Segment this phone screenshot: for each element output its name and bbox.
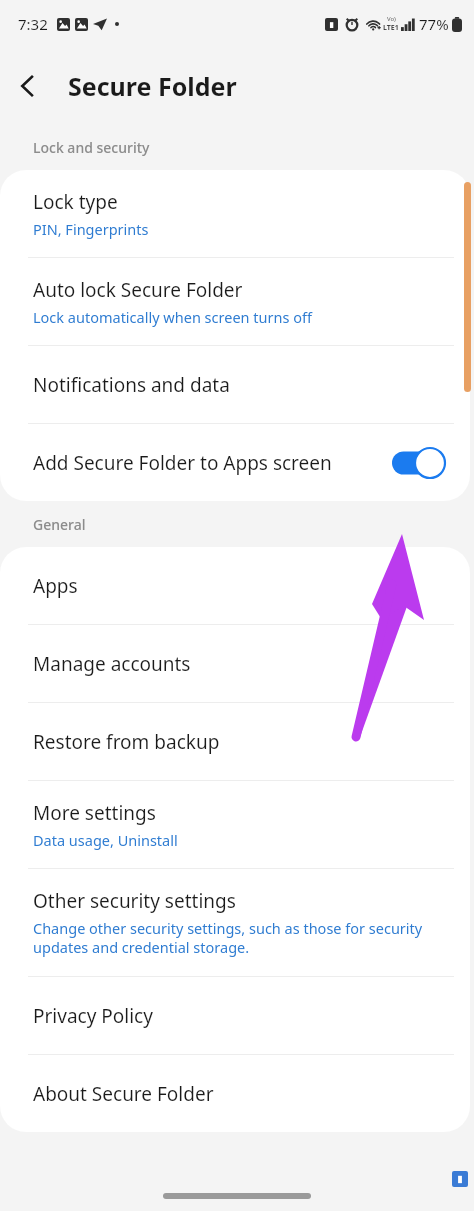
button[interactable]: Add Secure Folder to Apps screen <box>0 424 470 501</box>
staticText: Data usage, Uninstall <box>33 830 178 850</box>
button[interactable]: More settings <box>0 781 470 868</box>
staticText: More settings <box>33 800 156 826</box>
staticText: 77% <box>419 14 449 34</box>
staticText: Lock automatically when screen turns off <box>33 307 312 327</box>
button[interactable]: Other security settings <box>0 869 470 976</box>
staticText: Other security settings <box>33 888 236 914</box>
button[interactable]: Privacy Policy <box>0 977 470 1054</box>
staticText: Lock type <box>33 189 118 215</box>
staticText: PIN, Fingerprints <box>33 219 149 239</box>
staticText: Secure Folder <box>68 69 237 103</box>
staticText: Privacy Policy <box>33 1003 153 1029</box>
staticText: Restore from backup <box>33 729 220 755</box>
staticText: Notifications and data <box>33 372 230 398</box>
button[interactable]: Auto lock Secure Folder <box>0 258 470 345</box>
staticText: Apps <box>33 573 78 599</box>
button[interactable]: Notifications and data <box>0 346 470 423</box>
staticText: 7:32 <box>18 14 48 34</box>
staticText: LTE1 <box>383 23 399 33</box>
button[interactable]: Back <box>0 58 56 114</box>
staticText: Vo) <box>387 15 396 23</box>
button[interactable]: Restore from backup <box>0 703 470 780</box>
staticText: General <box>33 515 86 534</box>
button[interactable]: Manage accounts <box>0 625 470 702</box>
staticText: Auto lock Secure Folder <box>33 277 243 303</box>
staticText: Manage accounts <box>33 651 191 677</box>
button[interactable]: Apps <box>0 547 470 624</box>
button[interactable]: Add Secure Folder to Apps screen toggle <box>392 447 446 479</box>
staticText: Lock and security <box>33 138 150 157</box>
button[interactable]: About Secure Folder <box>0 1055 470 1132</box>
staticText: Add Secure Folder to Apps screen <box>33 450 332 476</box>
staticText: About Secure Folder <box>33 1081 214 1107</box>
button[interactable]: Lock type <box>0 170 470 257</box>
staticText: Change other security settings, such as … <box>33 918 446 957</box>
